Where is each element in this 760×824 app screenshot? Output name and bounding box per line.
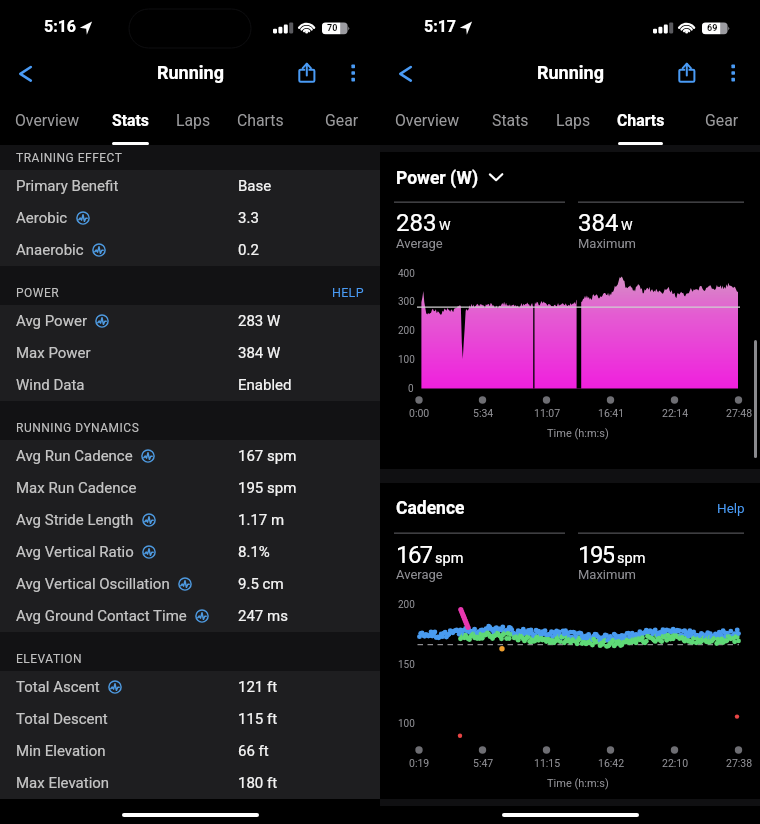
staticText: 16:42 [598,757,625,769]
button[interactable]: Total Ascent [0,671,380,703]
staticText: Enabled [238,376,292,394]
staticText: Gear [705,111,739,130]
button[interactable]: Stats [100,98,161,145]
button[interactable]: Total Descent [0,703,380,735]
button[interactable]: Avg Run Cadence [0,440,380,472]
staticText: 5:34 [473,407,494,419]
button[interactable]: Primary Benefit [0,170,380,202]
button[interactable]: Gear [693,98,750,145]
button[interactable]: Back [8,55,42,98]
button[interactable]: Gear [313,98,370,145]
staticText: 400 [398,268,415,280]
button[interactable]: More options [340,58,366,94]
button[interactable]: Overview [384,98,471,145]
button[interactable]: Max Elevation [0,767,380,799]
staticText: 0 [408,383,414,395]
button[interactable]: Avg Vertical Ratio [0,536,380,568]
staticText: Charts [237,111,284,130]
staticText: 195 spm [238,479,297,497]
button[interactable]: Avg Vertical Oscillation [0,568,380,600]
staticText: POWER [16,286,60,300]
button[interactable]: Charts [606,98,675,145]
staticText: 200 [398,599,415,611]
staticText: Running [537,62,604,83]
staticText: 16:41 [598,407,625,419]
staticText: 115 ft [238,710,278,728]
button[interactable]: Avg Stride Length [0,504,380,536]
staticText: 11:07 [534,407,561,419]
staticText: Laps [556,111,591,130]
staticText: 70 [327,23,338,34]
staticText: Average [396,567,443,582]
staticText: Cadence [396,498,465,519]
button[interactable]: Avg Power [0,305,380,337]
staticText: spm [617,550,646,567]
staticText: W [439,218,451,233]
button[interactable]: Max Power [0,337,380,369]
button[interactable]: Anaerobic [0,234,380,266]
button[interactable]: Max Run Cadence [0,472,380,504]
staticText: 3.3 [238,209,259,227]
button[interactable]: Change metric [484,166,508,190]
staticText: Average [396,236,443,251]
staticText: Avg Run Cadence [16,447,133,465]
button[interactable]: More options [720,58,746,94]
staticText: Max Power [16,344,91,362]
staticText: spm [435,550,464,567]
staticText: Max Elevation [16,774,110,792]
button[interactable]: Aerobic [0,202,380,234]
button[interactable]: Stats [480,98,541,145]
staticText: 27:48 [726,407,753,419]
staticText: TRAINING EFFECT [16,151,123,165]
staticText: 5:16 [44,17,77,36]
staticText: 200 [398,325,415,337]
staticText: Total Ascent [16,678,100,696]
staticText: 69 [707,23,718,34]
staticText: 5:47 [473,757,494,769]
staticText: Wind Data [16,376,85,394]
staticText: 121 ft [238,678,278,696]
staticText: W [621,218,633,233]
staticText: 300 [398,296,415,308]
button[interactable]: Back [388,55,422,98]
staticText: Avg Vertical Oscillation [16,575,170,593]
staticText: 0:19 [409,757,430,769]
staticText: Help [717,500,745,516]
staticText: 384 [578,209,619,235]
staticText: Max Run Cadence [16,479,137,497]
staticText: 180 ft [238,774,278,792]
staticText: Aerobic [16,209,68,227]
staticText: 195 [578,541,614,567]
button[interactable]: Laps [165,98,221,145]
staticText: Charts [617,111,665,130]
staticText: Gear [325,111,359,130]
button[interactable]: Charts [226,98,295,145]
staticText: Stats [492,111,529,130]
staticText: Avg Ground Contact Time [16,607,187,625]
button[interactable]: Help [702,496,752,520]
staticText: Stats [112,111,149,130]
button[interactable]: Wind Data [0,369,380,401]
staticText: Maximum [578,567,636,582]
button[interactable]: Avg Ground Contact Time [0,600,380,632]
staticText: 66 ft [238,742,269,760]
button[interactable]: Share [292,58,322,94]
staticText: 283 [396,209,437,235]
staticText: 8.1% [238,543,270,561]
staticText: 9.5 cm [238,575,284,593]
staticText: Maximum [578,236,636,251]
staticText: 150 [398,659,415,671]
staticText: Running [157,62,224,83]
button[interactable]: Overview [4,98,91,145]
staticText: Primary Benefit [16,177,119,195]
button[interactable]: HELP [316,281,380,305]
staticText: Avg Vertical Ratio [16,543,134,561]
staticText: 167 spm [238,447,297,465]
staticText: Total Descent [16,710,108,728]
button[interactable]: Share [672,58,702,94]
button[interactable]: Min Elevation [0,735,380,767]
button[interactable]: Laps [545,98,601,145]
staticText: 100 [398,718,415,730]
staticText: Avg Power [16,312,87,330]
staticText: 11:15 [534,757,561,769]
